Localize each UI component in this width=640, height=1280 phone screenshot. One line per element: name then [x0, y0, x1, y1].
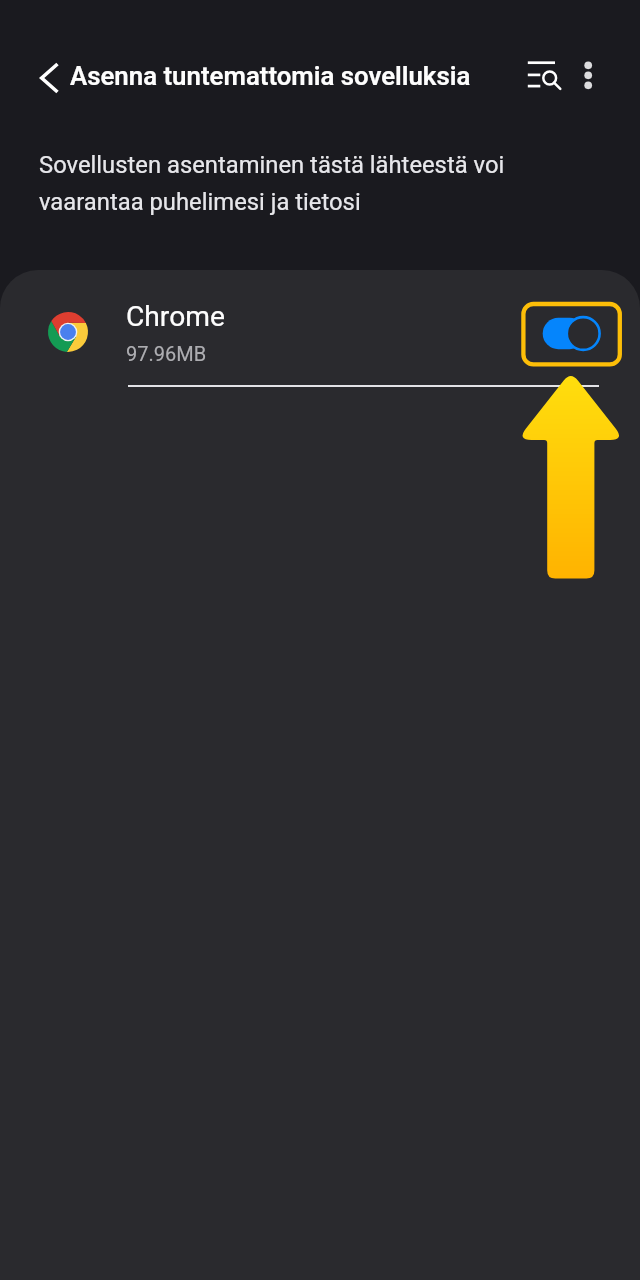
staticText: Asenna tuntemattomia sovelluksia	[70, 61, 471, 91]
button[interactable]: Search	[521, 56, 565, 100]
staticText: Sovellusten asentaminen tästä lähteestä …	[39, 151, 505, 216]
button[interactable]: Back	[26, 54, 72, 100]
button[interactable]: Allow from this source	[542, 315, 604, 353]
button[interactable]: Chrome	[0, 270, 640, 386]
button[interactable]: More options	[566, 52, 610, 96]
staticText: 97.96MB	[126, 342, 207, 365]
staticText: Chrome	[126, 300, 225, 333]
